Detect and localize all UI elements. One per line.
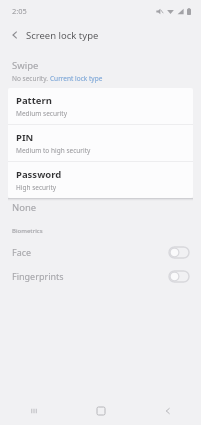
staticText: Biometrics: [12, 227, 43, 235]
button[interactable]: Swipe: [0, 54, 201, 88]
staticText: 2:05: [12, 6, 27, 16]
staticText: Pattern: [16, 94, 52, 107]
staticText: Fingerprints: [12, 270, 64, 282]
button[interactable]: Home: [67, 397, 134, 425]
button[interactable]: None: [0, 196, 201, 218]
staticText: Password: [16, 168, 62, 181]
button[interactable]: Password: [8, 162, 193, 198]
staticText: Swipe: [12, 59, 39, 72]
staticText: Current lock type: [50, 74, 103, 83]
button[interactable]: Face: [0, 240, 201, 264]
button[interactable]: Fingerprints: [0, 264, 201, 288]
button[interactable]: Back: [7, 27, 23, 43]
staticText: PIN: [16, 131, 34, 144]
staticText: No security.: [12, 74, 50, 83]
staticText: Medium to high security: [16, 146, 91, 155]
button[interactable]: Recents: [0, 397, 67, 425]
staticText: Screen lock type: [26, 29, 99, 42]
staticText: Face: [12, 246, 32, 258]
staticText: Medium security: [16, 109, 67, 118]
button[interactable]: PIN: [8, 125, 193, 161]
staticText: High security: [16, 183, 57, 192]
button[interactable]: Pattern: [8, 88, 193, 124]
staticText: None: [12, 201, 37, 214]
